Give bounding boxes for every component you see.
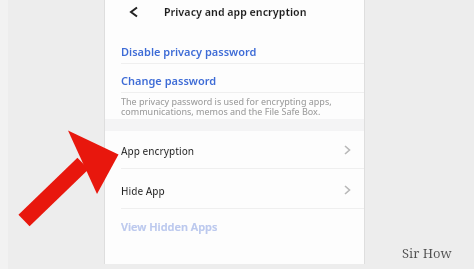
staticText: Change password [121,73,217,88]
button[interactable] [105,169,364,208]
staticText: App encryption [121,144,195,158]
staticText: Hide App [121,184,165,198]
button[interactable] [128,6,140,18]
button[interactable] [105,0,364,33]
button[interactable] [105,64,364,92]
staticText: The privacy password is used for encrypt… [121,95,332,107]
button[interactable] [105,209,364,239]
staticText: Sir How [402,244,452,262]
staticText: View Hidden Apps [121,219,218,234]
button[interactable] [105,131,364,168]
button[interactable] [105,36,364,63]
staticText: Privacy and app encryption [164,5,307,19]
staticText: communications, memos and the File Safe … [121,105,321,117]
staticText: Disable privacy password [121,44,257,59]
